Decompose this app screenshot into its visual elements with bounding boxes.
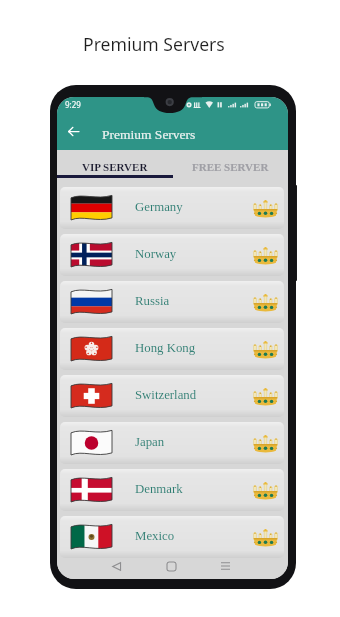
button[interactable]: Mexico bbox=[60, 516, 284, 558]
staticText: Norway bbox=[135, 247, 177, 261]
button[interactable]: Switzerland bbox=[60, 375, 284, 417]
button[interactable]: Recent apps bbox=[215, 556, 235, 576]
staticText: Japan bbox=[135, 435, 165, 449]
staticText: Germany bbox=[135, 200, 183, 214]
button[interactable]: Home bbox=[161, 556, 181, 576]
button[interactable]: Hong Kong bbox=[60, 328, 284, 370]
staticText: Premium Servers bbox=[102, 127, 196, 142]
button[interactable]: Norway bbox=[60, 234, 284, 276]
staticText: Denmark bbox=[135, 482, 183, 496]
staticText: 9:29 bbox=[65, 99, 81, 110]
button[interactable]: FREE SERVER bbox=[172, 150, 288, 183]
button[interactable]: Back bbox=[61, 119, 85, 143]
button[interactable]: Back bbox=[106, 556, 126, 576]
button[interactable]: VIP SERVER bbox=[57, 150, 172, 183]
button[interactable]: Germany bbox=[60, 187, 284, 229]
staticText: Premium Servers bbox=[83, 32, 225, 56]
staticText: VIP SERVER bbox=[82, 161, 148, 173]
staticText: Hong Kong bbox=[135, 341, 196, 355]
staticText: Switzerland bbox=[135, 388, 197, 402]
staticText: Russia bbox=[135, 294, 170, 308]
staticText: Mexico bbox=[135, 529, 175, 543]
staticText: FREE SERVER bbox=[192, 161, 269, 173]
button[interactable]: Japan bbox=[60, 422, 284, 464]
button[interactable]: Denmark bbox=[60, 469, 284, 511]
button[interactable]: Russia bbox=[60, 281, 284, 323]
